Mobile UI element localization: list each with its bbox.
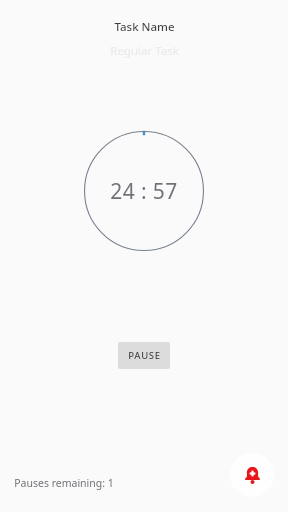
staticText: Regular Task (110, 43, 179, 59)
staticText: 24 : 57 (110, 177, 178, 206)
staticText: Task Name (114, 19, 175, 35)
staticText: PAUSE (128, 349, 161, 362)
staticText: Pauses remaining: 1 (14, 476, 114, 490)
button[interactable]: Add reminder (230, 453, 274, 497)
button[interactable]: PAUSE (118, 342, 170, 369)
